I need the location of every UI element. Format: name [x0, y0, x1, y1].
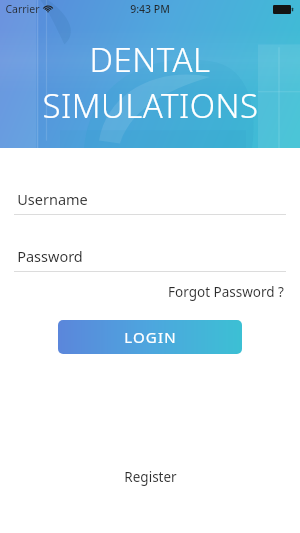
button[interactable]: Password	[0, 245, 300, 272]
staticText: Password	[17, 246, 83, 266]
staticText: SIMULATIONS	[42, 83, 259, 128]
staticText: Username	[17, 189, 88, 209]
staticText: 9:43 PM	[130, 2, 170, 16]
staticText: Forgot Password ?	[168, 283, 284, 301]
button[interactable]: Register	[116, 464, 185, 490]
staticText: DENTAL	[89, 37, 211, 82]
staticText: LOGIN	[124, 327, 177, 347]
staticText: Carrier	[5, 2, 40, 16]
button[interactable]: LOGIN	[58, 320, 242, 354]
button[interactable]: Username	[0, 188, 300, 215]
button[interactable]: Forgot Password ?	[166, 280, 286, 304]
staticText: Register	[124, 468, 177, 486]
